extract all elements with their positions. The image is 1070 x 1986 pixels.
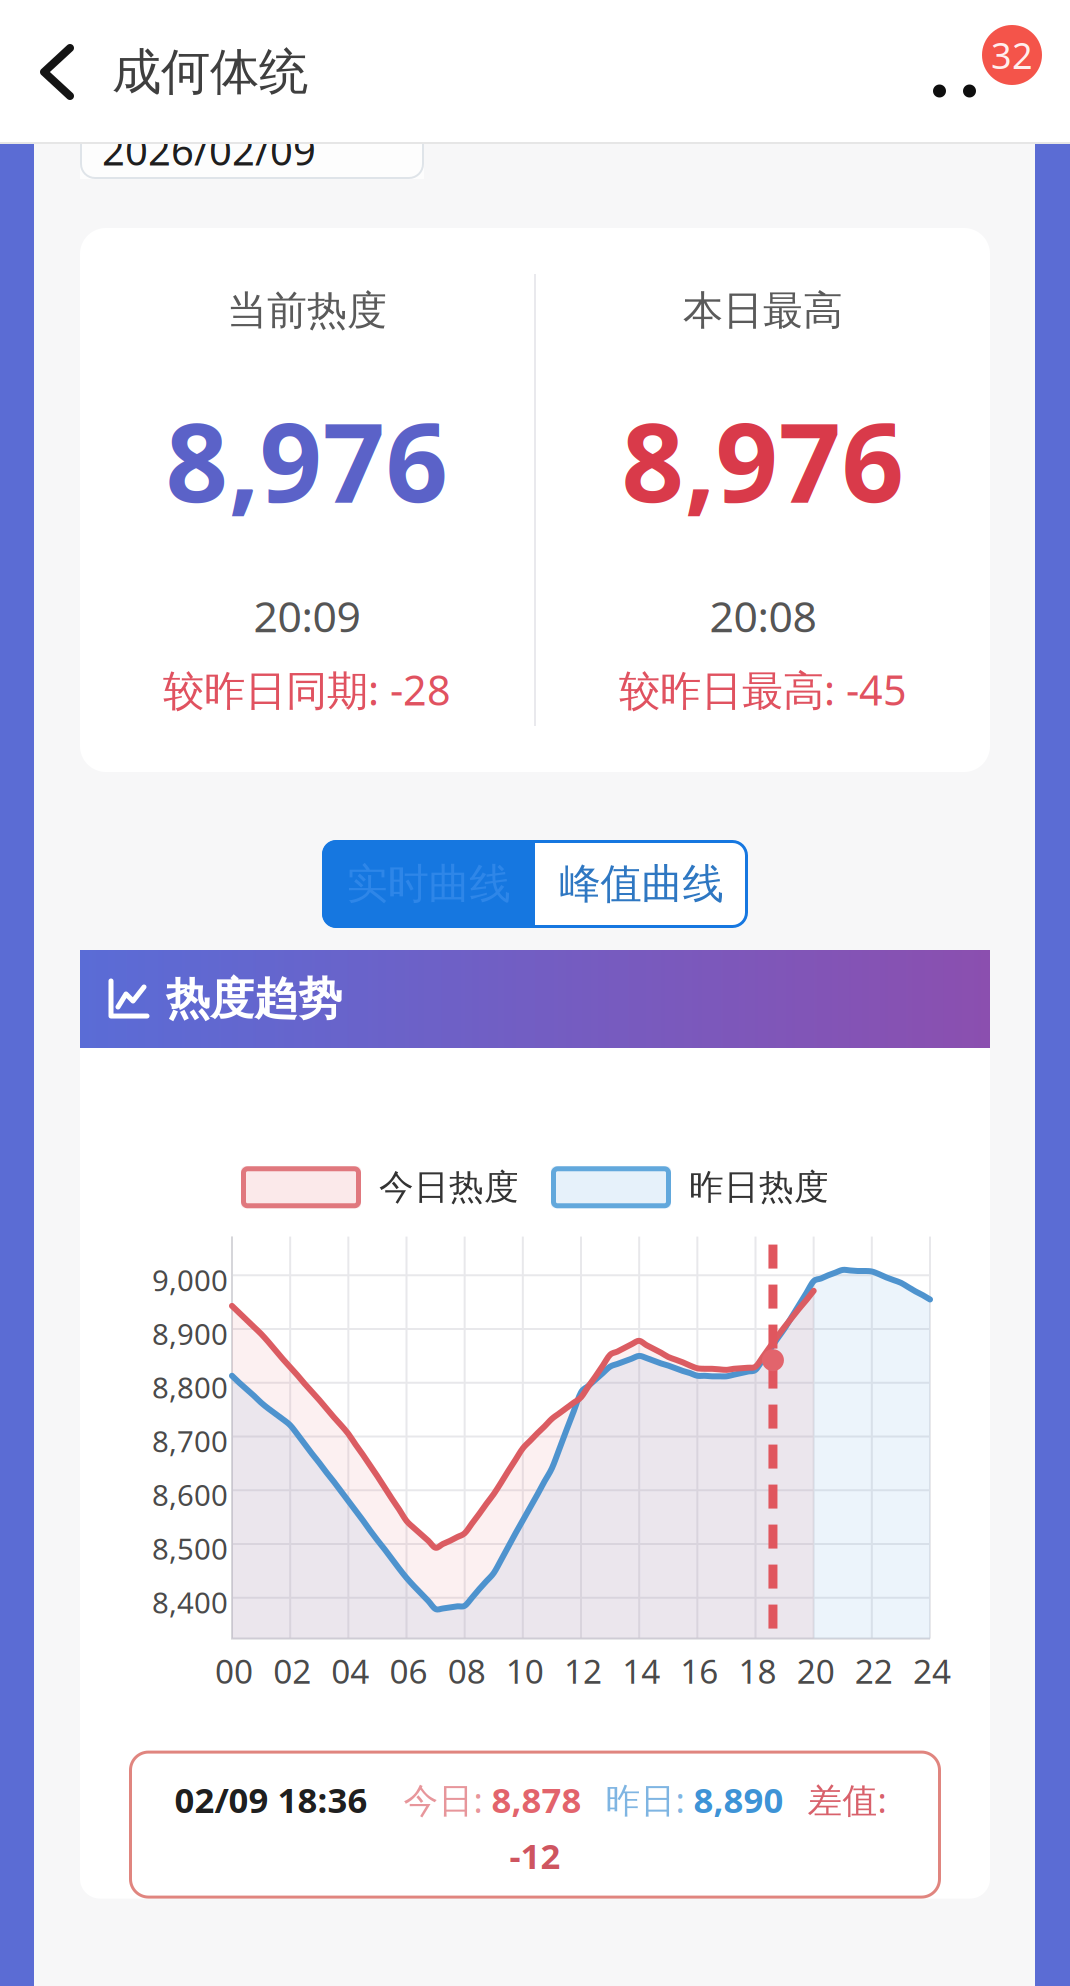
staticText: 较昨日最高: -45	[619, 662, 907, 717]
staticText: 热度趋势	[166, 972, 342, 1026]
staticText: 9,000	[152, 1260, 228, 1299]
staticText: 06	[389, 1649, 427, 1693]
staticText: 8,890	[693, 1777, 783, 1823]
staticText: 20	[797, 1649, 835, 1693]
staticText: 峰值曲线	[559, 859, 723, 909]
staticText: 8,976	[165, 387, 448, 532]
staticText: 今日:	[403, 1777, 491, 1823]
staticText: 2026/02/09	[102, 123, 316, 176]
staticText: 本日最高	[683, 286, 843, 335]
staticText: 昨日:	[605, 1777, 693, 1823]
button[interactable]: Back	[0, 0, 112, 144]
staticText: -12	[509, 1833, 560, 1879]
staticText: 8,400	[152, 1583, 228, 1622]
staticText: 差值:	[807, 1777, 895, 1823]
button[interactable]: 实时曲线	[322, 840, 535, 928]
button[interactable]: More options	[886, 0, 976, 144]
staticText: 18	[738, 1649, 776, 1693]
staticText: 今日热度	[379, 1166, 519, 1209]
staticText: 24	[913, 1649, 951, 1693]
staticText: 8,976	[621, 387, 904, 532]
staticText: 实时曲线	[346, 859, 510, 909]
staticText: 10	[506, 1649, 544, 1693]
button[interactable]: 峰值曲线	[535, 840, 748, 928]
staticText: 20:09	[253, 587, 360, 644]
staticText: 较昨日同期: -28	[163, 662, 451, 717]
staticText: 8,700	[152, 1421, 228, 1460]
staticText: 8,900	[152, 1314, 228, 1353]
staticText: 8,878	[491, 1777, 581, 1823]
button[interactable]: 2026/02/09	[80, 121, 424, 179]
staticText: 02/09 18:36	[174, 1777, 367, 1823]
button[interactable]: Notifications, 32 unread	[976, 0, 1070, 144]
staticText: 22	[855, 1649, 893, 1693]
staticText: 04	[331, 1649, 369, 1693]
staticText: 08	[448, 1649, 486, 1693]
staticText: 14	[622, 1649, 660, 1693]
staticText: 昨日热度	[689, 1166, 829, 1209]
staticText: 16	[680, 1649, 718, 1693]
staticText: 32	[991, 31, 1033, 79]
staticText: 20:08	[709, 587, 816, 644]
staticText: 成何体统	[112, 42, 308, 102]
staticText: 02	[273, 1649, 311, 1693]
staticText: 当前热度	[227, 286, 387, 335]
staticText: 8,800	[152, 1368, 228, 1407]
staticText: 12	[564, 1649, 602, 1693]
staticText: 8,600	[152, 1475, 228, 1514]
staticText: 00	[215, 1649, 253, 1693]
staticText: 8,500	[152, 1529, 228, 1568]
